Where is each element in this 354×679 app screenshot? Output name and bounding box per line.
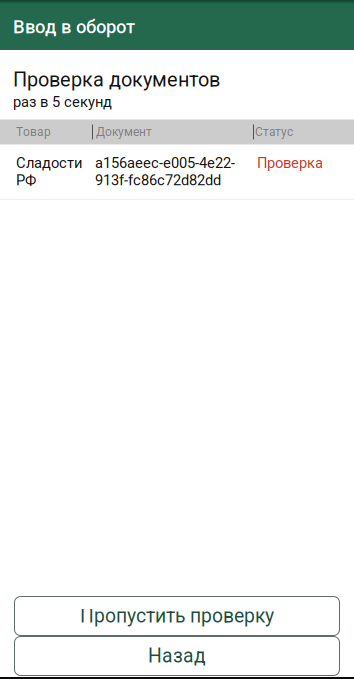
staticText: Пропустить проверку	[80, 605, 274, 627]
button[interactable]: Пропустить проверку	[14, 596, 340, 636]
staticText: Проверка документов	[13, 68, 220, 91]
staticText: РФ	[16, 172, 36, 189]
staticText: a156aeec-e005-4e22-	[95, 154, 235, 172]
button[interactable]: Назад	[14, 636, 340, 676]
staticText: 913f-fc86c72d82dd	[95, 172, 221, 189]
staticText: Назад	[148, 645, 206, 667]
staticText: Документ	[96, 125, 152, 139]
staticText: раз в 5 секунд	[13, 93, 112, 110]
staticText: Ввод в оборот	[13, 16, 135, 38]
staticText: Сладости	[16, 154, 82, 172]
staticText: Товар	[16, 125, 51, 139]
staticText: Статус	[255, 125, 293, 139]
staticText: Проверка	[257, 154, 323, 172]
